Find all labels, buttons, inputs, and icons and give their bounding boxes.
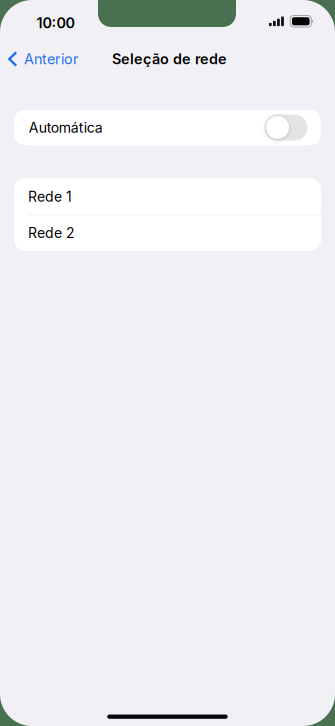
- button[interactable]: Anterior: [0, 44, 110, 74]
- staticText: 10:00: [36, 14, 74, 32]
- button[interactable]: Rede 1: [14, 178, 321, 215]
- staticText: Rede 2: [28, 224, 75, 241]
- button[interactable]: Rede 2: [14, 215, 321, 251]
- staticText: Anterior: [24, 50, 78, 68]
- staticText: Automática: [29, 119, 103, 136]
- staticText: Seleção de rede: [112, 50, 227, 68]
- staticText: Rede 1: [28, 188, 72, 205]
